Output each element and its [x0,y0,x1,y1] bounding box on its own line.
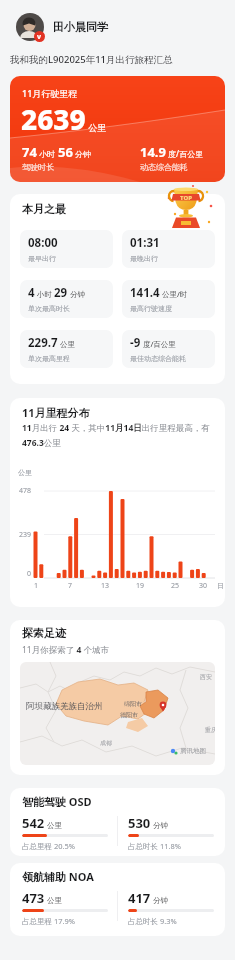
staticText: 1 [34,581,39,591]
staticText: 13 [101,581,110,591]
staticText: 14.9 [140,143,166,161]
button[interactable]: 探索足迹 [10,620,225,775]
staticText: 动态综合能耗 [140,162,188,172]
staticText: 单次最高时长 [28,304,70,313]
staticText: 11月里程分布 [22,405,90,420]
staticText: 478 [10,486,31,496]
staticText: 度/百公里 [166,148,204,159]
staticText: 74 [22,143,37,161]
staticText: 绵阳市 [124,700,142,708]
staticText: 公里 [86,121,107,133]
staticText: 德阳市 [120,711,138,719]
staticText: 我和我的L902025年11月出行旅程汇总 [10,53,173,66]
staticText: 度/百公里 [141,339,176,349]
staticText: 占总里程 17.9% [22,916,76,926]
staticText: 驾驶时长 [22,162,54,172]
button[interactable]: 智能驾驶 OSD [10,788,225,856]
staticText: 11月你探索了 4 个城市 [22,644,110,656]
staticText: 智能驾驶 OSD [22,794,92,809]
staticText: 2639 [21,100,86,138]
staticText: 成都 [100,739,112,747]
staticText: 239 [10,530,31,540]
button[interactable]: 01:31 [122,230,215,268]
staticText: 领航辅助 NOA [22,869,94,884]
staticText: 08:00 [28,235,58,251]
staticText: 417 [128,889,151,907]
staticText: 腾讯地图 [180,747,206,755]
staticText: 公里 [18,468,32,477]
staticText: 530 [128,814,151,832]
staticText: 占总里程 20.5% [22,841,76,851]
staticText: 最高行驶速度 [130,304,172,313]
staticText: 探索足迹 [22,626,66,640]
staticText: 分钟 [73,148,92,159]
staticText: 日 [217,581,224,590]
button[interactable]: 229.7 [20,330,113,368]
staticText: 单次最高里程 [28,354,70,363]
staticText: 最佳动态综合能耗 [130,354,186,363]
staticText: 田小晨同学 [53,20,108,34]
staticText: 4 [28,285,35,301]
staticText: 11月出行 24 天，其中11月14日出行里程最高，有 476.3公里 [22,422,217,449]
staticText: 阿坝藏族羌族自治州 [26,701,103,712]
staticText: 229.7 [28,335,58,351]
staticText: 7 [68,581,73,591]
button[interactable]: 141.4 [122,280,215,318]
staticText: V [37,33,42,41]
staticText: -9 [130,335,141,351]
staticText: 01:31 [130,235,160,251]
staticText: 0 [10,569,31,579]
staticText: 分钟 [68,289,85,299]
staticText: 141.4 [130,285,160,301]
staticText: 小时 [37,148,58,159]
button[interactable]: 11月行驶里程 [10,76,225,182]
button[interactable]: 本月之最 [10,194,225,384]
staticText: 25 [171,581,180,591]
staticText: 30 [199,581,208,591]
button[interactable]: V [16,13,108,41]
staticText: 本月之最 [22,202,66,216]
staticText: 公里 [45,820,62,830]
staticText: 分钟 [151,895,168,905]
staticText: 西安 [200,673,212,681]
staticText: 公里 [58,339,75,349]
staticText: 占总时长 11.8% [128,841,182,851]
staticText: 分钟 [151,820,168,830]
staticText: 473 [22,889,45,907]
staticText: 542 [22,814,45,832]
button[interactable]: 领航辅助 NOA [10,863,225,936]
staticText: 11月行驶里程 [22,87,78,99]
staticText: 最早出行 [28,254,56,263]
staticText: 公里 [45,895,62,905]
button[interactable]: -9 [122,330,215,368]
staticText: 最晚出行 [130,254,158,263]
staticText: 19 [136,581,145,591]
staticText: 29 [54,285,68,301]
staticText: 小时 [35,289,54,299]
staticText: 占总时长 9.3% [128,916,177,926]
button[interactable]: 08:00 [20,230,113,268]
button[interactable]: 11月里程分布 [10,398,225,607]
staticText: 公里/时 [160,289,188,299]
staticText: TOP [180,194,192,202]
staticText: 重庆 [205,726,215,734]
staticText: 56 [58,143,73,161]
button[interactable]: 4 [20,280,113,318]
